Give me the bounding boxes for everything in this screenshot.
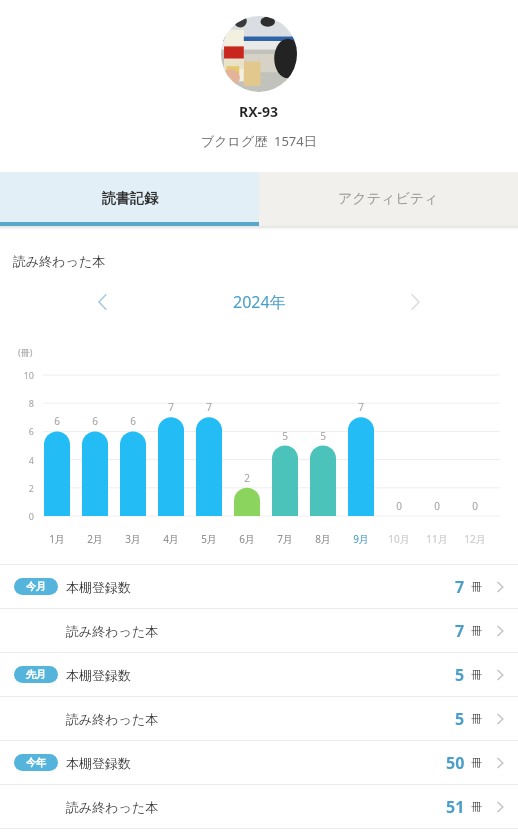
staticText: 読み終わった本 — [66, 799, 159, 815]
button[interactable]: Profile photo — [221, 16, 297, 92]
staticText: 2 — [12, 482, 34, 494]
button[interactable]: 読み終わった本 — [0, 697, 518, 740]
staticText: 10 — [12, 369, 34, 381]
staticText: 2月 — [77, 532, 113, 546]
button[interactable]: 2024年 — [233, 291, 286, 313]
button[interactable]: アクティビティ — [259, 172, 518, 226]
button[interactable]: 読書記録 — [0, 172, 259, 226]
staticText: 本棚登録数 — [66, 579, 131, 595]
staticText: 読み終わった本 — [13, 253, 106, 269]
staticText: 4月 — [153, 532, 189, 546]
staticText: (冊) — [18, 346, 33, 358]
staticText: 読み終わった本 — [66, 623, 159, 639]
button[interactable]: 今月 — [0, 565, 518, 608]
staticText: 7月 — [267, 532, 303, 546]
staticText: 今年 — [26, 756, 46, 769]
staticText: 7 — [455, 620, 465, 642]
staticText: 先月 — [26, 668, 46, 681]
staticText: 6月 — [229, 532, 265, 546]
staticText: 12月 — [457, 532, 493, 546]
staticText: 本棚登録数 — [66, 667, 131, 683]
staticText: 11月 — [419, 532, 455, 546]
staticText: 5 — [455, 708, 465, 730]
staticText: 4 — [12, 454, 34, 466]
button[interactable]: 読み終わった本 — [0, 609, 518, 652]
staticText: 冊 — [471, 756, 482, 770]
button[interactable]: Previous year — [88, 287, 118, 317]
staticText: 6 — [120, 414, 146, 428]
staticText: 5 — [272, 429, 298, 443]
staticText: 0 — [12, 510, 34, 522]
staticText: 6 — [12, 425, 34, 437]
staticText: 5 — [310, 429, 336, 443]
staticText: 今月 — [26, 580, 46, 593]
staticText: 5 — [455, 664, 465, 686]
staticText: 8月 — [305, 532, 341, 546]
staticText: RX-93 — [239, 102, 279, 121]
staticText: 7 — [348, 400, 374, 414]
staticText: ブクログ歴 1574日 — [201, 132, 317, 150]
staticText: 3月 — [115, 532, 151, 546]
staticText: 冊 — [471, 668, 482, 682]
staticText: 51 — [446, 796, 465, 818]
staticText: 0 — [462, 499, 488, 513]
staticText: 6 — [44, 414, 70, 428]
staticText: 0 — [424, 499, 450, 513]
staticText: 9月 — [343, 532, 379, 546]
button[interactable]: 今年 — [0, 741, 518, 784]
staticText: アクティビティ — [338, 190, 439, 208]
staticText: 1月 — [39, 532, 75, 546]
staticText: 冊 — [471, 624, 482, 638]
button[interactable]: 読み終わった本 — [0, 785, 518, 828]
button[interactable]: Next year — [400, 287, 430, 317]
staticText: 7 — [455, 576, 465, 598]
staticText: 冊 — [471, 580, 482, 594]
staticText: 読書記録 — [102, 190, 158, 208]
staticText: 冊 — [471, 712, 482, 726]
staticText: 読み終わった本 — [66, 711, 159, 727]
staticText: 0 — [386, 499, 412, 513]
staticText: 本棚登録数 — [66, 755, 131, 771]
staticText: 10月 — [381, 532, 417, 546]
staticText: 6 — [82, 414, 108, 428]
staticText: 2 — [234, 471, 260, 485]
button[interactable]: 先月 — [0, 653, 518, 696]
staticText: 冊 — [471, 800, 482, 814]
staticText: 50 — [446, 752, 465, 774]
staticText: 7 — [158, 400, 184, 414]
staticText: 8 — [12, 397, 34, 409]
staticText: 7 — [196, 400, 222, 414]
staticText: 5月 — [191, 532, 227, 546]
